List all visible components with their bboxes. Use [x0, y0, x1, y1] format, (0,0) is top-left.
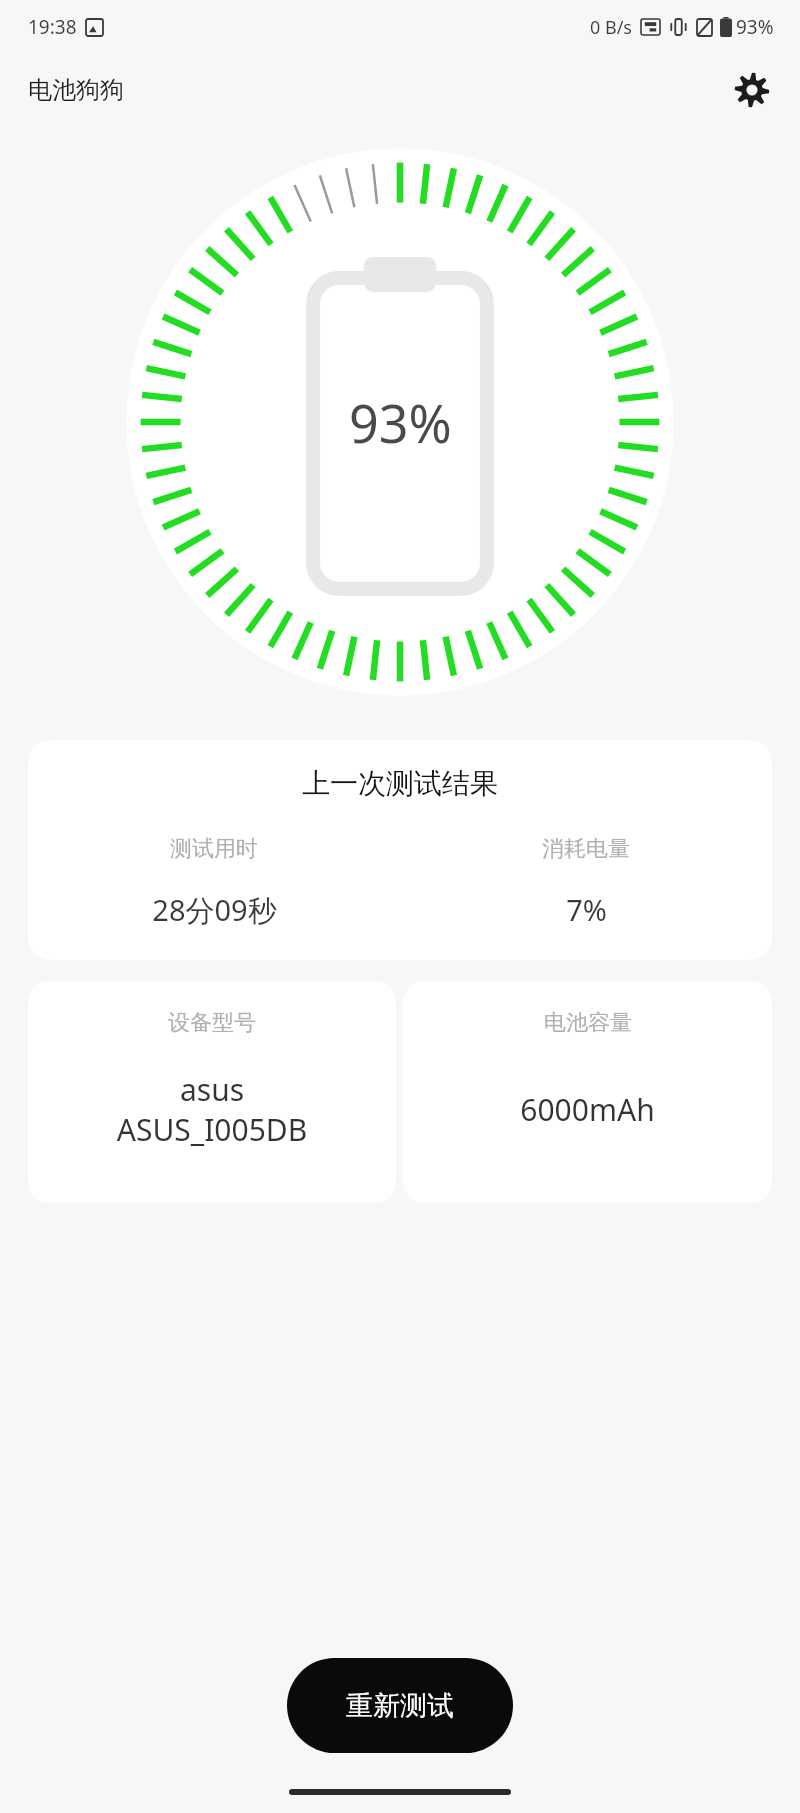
staticText: 测试用时: [170, 835, 258, 863]
staticText: 28分09秒: [152, 890, 277, 930]
staticText: 93%: [349, 387, 452, 458]
button[interactable]: 设备型号: [28, 981, 396, 1203]
staticText: 电池容量: [544, 1009, 632, 1037]
staticText: 6000mAh: [403, 1089, 772, 1130]
staticText: 7%: [566, 890, 607, 929]
button[interactable]: Settings: [728, 66, 776, 114]
button[interactable]: 上一次测试结果: [28, 740, 772, 960]
staticText: 上一次测试结果: [28, 766, 772, 801]
staticText: 0 B/s: [590, 15, 632, 40]
button[interactable]: 重新测试: [287, 1658, 513, 1753]
staticText: 重新测试: [346, 1689, 454, 1723]
staticText: 设备型号: [168, 1009, 256, 1037]
staticText: 93%: [736, 14, 774, 40]
staticText: 19:38: [28, 14, 77, 40]
staticText: 消耗电量: [542, 835, 630, 863]
button[interactable]: 电池容量: [403, 981, 772, 1203]
staticText: asus ASUS_I005DB: [28, 1069, 396, 1150]
staticText: 电池狗狗: [28, 75, 124, 105]
